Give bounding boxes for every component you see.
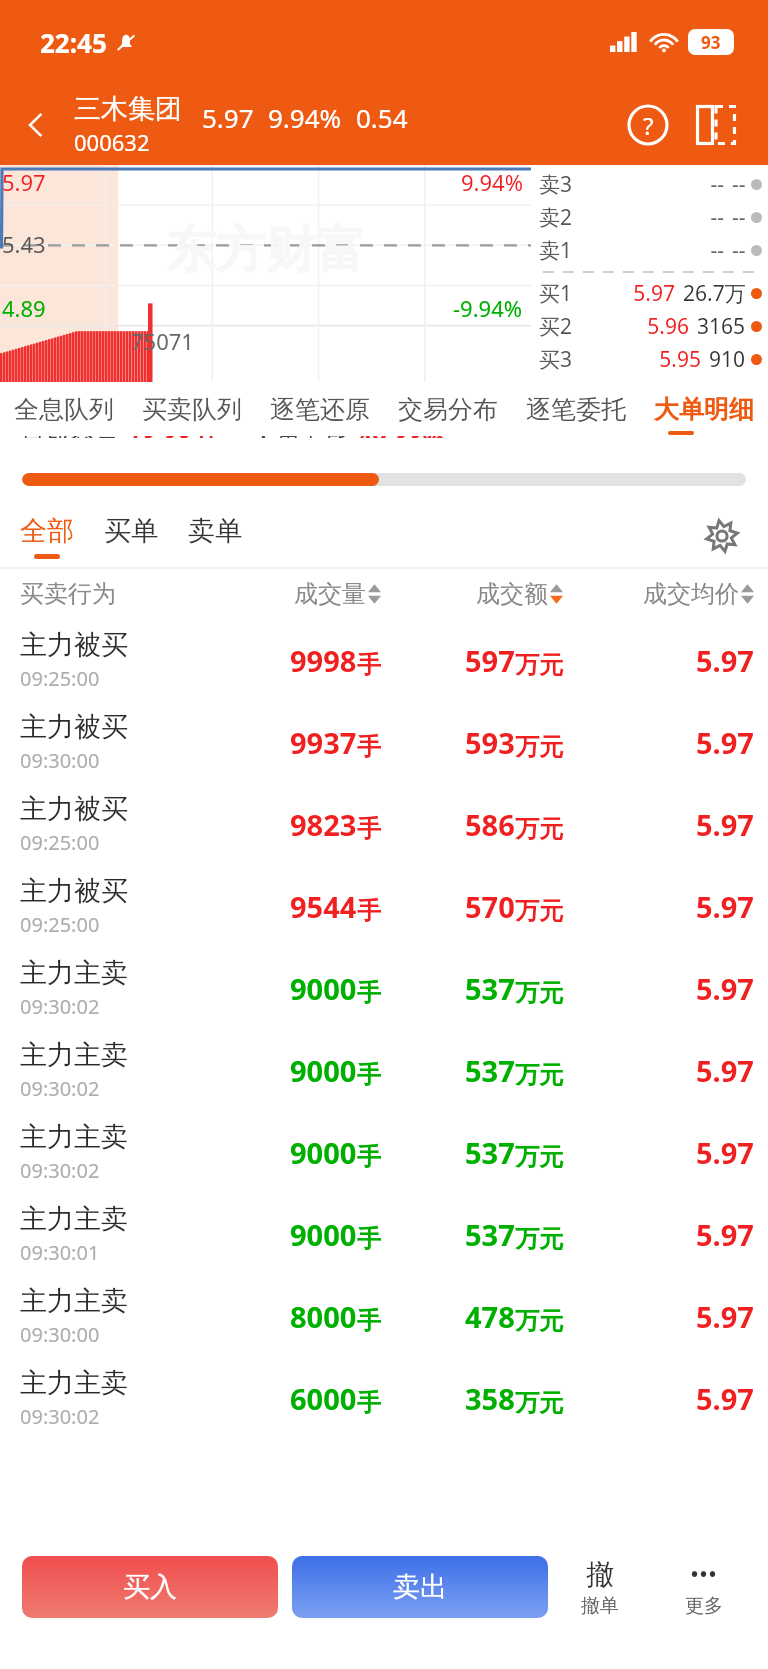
staticText: 9000 (290, 1051, 357, 1090)
button[interactable]: 主力主卖 (0, 1275, 768, 1357)
staticText: 5.43 (2, 229, 46, 259)
staticText: 9.94% (461, 167, 523, 197)
staticText: 交易分布 (398, 394, 498, 425)
staticText: 4.89 (2, 293, 46, 323)
button[interactable]: 卖单 (162, 514, 246, 559)
staticText: 9000 (290, 1133, 357, 1172)
button[interactable]: 主力被买 (0, 783, 768, 865)
staticText: -- (732, 236, 746, 265)
staticText: 9823 (290, 805, 357, 844)
button[interactable]: 主力主卖 (0, 1029, 768, 1111)
button[interactable]: 卖2 (539, 201, 762, 234)
staticText: 万元 (515, 1388, 563, 1418)
button[interactable]: 全息队列 (0, 382, 128, 436)
staticText: 手 (357, 896, 381, 926)
staticText: 买1 (539, 279, 573, 308)
button[interactable]: 主力主卖 (0, 1111, 768, 1193)
button[interactable]: Layout (686, 95, 746, 155)
staticText: 手 (357, 1306, 381, 1336)
staticText: 主力主卖 (20, 956, 128, 990)
button[interactable]: 主力被买 (0, 619, 768, 701)
staticText: -9.94% (453, 293, 523, 323)
button[interactable]: ••• (652, 1557, 756, 1618)
staticText: 买卖行为 (20, 579, 116, 609)
staticText: 成交均价 (643, 579, 739, 609)
staticText: 5.97 (573, 279, 675, 308)
button[interactable]: 主力主卖 (0, 1193, 768, 1275)
staticText: 手 (357, 1224, 381, 1254)
button[interactable]: 撤 (548, 1557, 652, 1618)
button[interactable]: Back (0, 84, 72, 165)
staticText: -- (732, 203, 746, 232)
staticText: 5.97 (696, 805, 754, 844)
button[interactable]: 主力主卖 (0, 1357, 768, 1439)
button[interactable]: 卖3 (539, 168, 762, 201)
button[interactable]: 大单明细 (640, 382, 768, 436)
button[interactable]: Settings (698, 512, 746, 560)
staticText: 9937 (290, 723, 357, 762)
button[interactable]: 成交额 (381, 569, 563, 619)
button[interactable]: 主力被买 (0, 865, 768, 947)
button[interactable]: 逐笔还原 (256, 382, 384, 436)
staticText: 万元 (515, 978, 563, 1008)
button[interactable]: 逐笔委托 (512, 382, 640, 436)
staticText: 成交额 (476, 579, 548, 609)
staticText: 卖出 (393, 1570, 447, 1604)
staticText: 大单明细 (654, 394, 754, 425)
staticText: 万元 (515, 896, 563, 926)
staticText: 主力被买 (20, 710, 128, 744)
staticText: 5.97 (696, 1051, 754, 1090)
staticText: 5.97 (696, 1215, 754, 1254)
button[interactable]: 买单 (78, 514, 162, 559)
staticText: 主力主卖 (20, 1120, 128, 1154)
button[interactable]: 卖1 (539, 234, 762, 267)
button[interactable]: 交易分布 (384, 382, 512, 436)
button[interactable]: 买2 (539, 310, 762, 343)
button[interactable]: 主力被买 (0, 701, 768, 783)
staticText: 75071 (131, 326, 194, 356)
button[interactable]: 买卖队列 (128, 382, 256, 436)
staticText: 手 (357, 814, 381, 844)
staticText: 593 (465, 723, 515, 762)
staticText: 5.97 (696, 887, 754, 926)
staticText: 09:25:00 (20, 829, 100, 856)
button[interactable]: 买入 (22, 1556, 278, 1618)
staticText: 09:30:02 (20, 1403, 100, 1430)
staticText: 5.97 (696, 641, 754, 680)
staticText: 9000 (290, 969, 357, 1008)
staticText: 358 (465, 1379, 515, 1418)
staticText: 主力被买 (20, 792, 128, 826)
staticText: 卖3 (539, 170, 573, 199)
button[interactable]: 买3 (539, 343, 762, 376)
button[interactable]: 卖出 (292, 1556, 548, 1618)
staticText: 买入 (123, 1570, 177, 1604)
staticText: 主力主卖 (20, 1038, 128, 1072)
staticText: 49.33% (358, 436, 445, 438)
button[interactable]: 全部 (0, 514, 78, 559)
staticText: 5.97 (2, 167, 46, 197)
button[interactable]: 成交均价 (563, 569, 754, 619)
staticText: 5.96 (573, 312, 689, 341)
button[interactable]: 成交量 (200, 569, 381, 619)
staticText: 597 (465, 641, 515, 680)
button[interactable]: 买1 (539, 277, 762, 310)
staticText: 9544 (290, 887, 357, 926)
staticText: 09:30:00 (20, 747, 100, 774)
staticText: 5.97 (202, 100, 254, 135)
button[interactable]: 主力主卖 (0, 947, 768, 1029)
staticText: 万元 (515, 650, 563, 680)
staticText: 6000 (290, 1379, 357, 1418)
staticText: 09:25:00 (20, 665, 100, 692)
staticText: ? (643, 109, 654, 142)
staticText: 万元 (515, 1060, 563, 1090)
staticText: 5.97 (696, 969, 754, 1008)
staticText: 537 (465, 1215, 515, 1254)
staticText: 3165 (697, 312, 746, 341)
staticText: 910 (709, 345, 746, 374)
staticText: 22:45 (40, 25, 107, 60)
button[interactable]: Help (618, 95, 678, 155)
staticText: 主力被买 (20, 874, 128, 908)
staticText: 万元 (515, 1224, 563, 1254)
staticText: 93 (701, 31, 721, 54)
staticText: 000632 (74, 127, 150, 157)
